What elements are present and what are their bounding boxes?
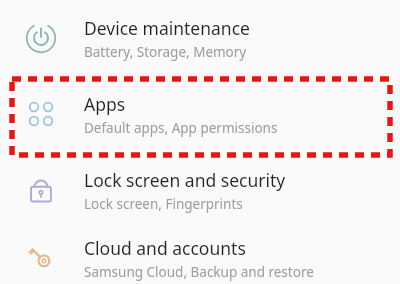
staticText: Device maintenance	[84, 16, 250, 40]
other: Device maintenance	[25, 22, 57, 54]
staticText: Lock screen, Fingerprints	[84, 195, 243, 213]
other: Cloud and accounts	[25, 242, 57, 274]
staticText: Apps	[84, 92, 126, 116]
staticText: Lock screen and security	[84, 168, 286, 192]
staticText: Samsung Cloud, Backup and restore	[84, 263, 314, 281]
button[interactable]: Apps	[0, 80, 400, 148]
staticText: Cloud and accounts	[84, 236, 246, 260]
staticText: Battery, Storage, Memory	[84, 43, 247, 61]
button[interactable]: Cloud and accounts	[0, 224, 400, 284]
button[interactable]: Device maintenance	[0, 4, 400, 72]
other: Lock screen and security	[25, 174, 57, 206]
other: Apps	[25, 98, 57, 130]
button[interactable]: Lock screen and security	[0, 156, 400, 224]
staticText: Default apps, App permissions	[84, 119, 278, 137]
